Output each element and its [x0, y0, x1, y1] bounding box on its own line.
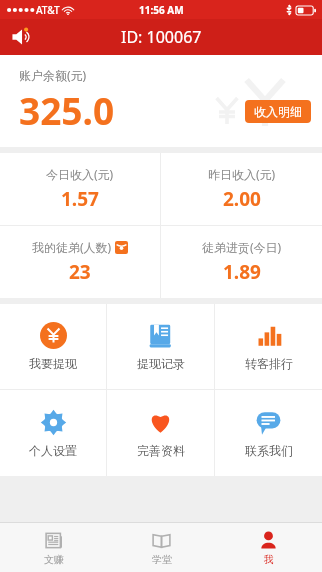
- button[interactable]: 今日收入(元): [0, 153, 160, 225]
- staticText: ID: 100067: [121, 26, 202, 48]
- button[interactable]: 完善资料: [107, 390, 214, 476]
- button[interactable]: 我: [215, 523, 322, 572]
- button[interactable]: 文赚: [0, 523, 108, 572]
- button[interactable]: 收入明细: [245, 100, 311, 123]
- staticText: 学堂: [152, 553, 172, 566]
- button[interactable]: 徒弟进贡(今日): [161, 226, 322, 298]
- staticText: 2.00: [223, 186, 261, 212]
- staticText: 个人设置: [29, 443, 77, 458]
- staticText: AT&T: [36, 3, 60, 17]
- staticText: 1.89: [223, 259, 261, 285]
- staticText: 今日收入(元): [46, 166, 114, 182]
- staticText: 325.0: [19, 85, 115, 135]
- staticText: 我要提现: [29, 356, 77, 371]
- staticText: 账户余额(元): [19, 67, 87, 83]
- staticText: 我的徒弟(人数): [32, 239, 112, 255]
- staticText: 文赚: [44, 553, 64, 566]
- staticText: 提现记录: [137, 356, 185, 371]
- button[interactable]: 我要提现: [0, 304, 106, 389]
- staticText: 联系我们: [245, 443, 293, 458]
- button[interactable]: 我的徒弟(人数): [0, 226, 160, 298]
- button[interactable]: 转客排行: [215, 304, 322, 389]
- staticText: 11:56 AM: [139, 3, 184, 17]
- button[interactable]: 学堂: [108, 523, 215, 572]
- staticText: 昨日收入(元): [208, 166, 276, 182]
- staticText: 徒弟进贡(今日): [202, 239, 282, 255]
- button[interactable]: 个人设置: [0, 390, 106, 476]
- button[interactable]: Announcements: [8, 24, 38, 50]
- staticText: 转客排行: [245, 356, 293, 371]
- staticText: 我: [264, 553, 274, 566]
- staticText: 1.57: [61, 186, 99, 212]
- button[interactable]: 联系我们: [215, 390, 322, 476]
- button[interactable]: 提现记录: [107, 304, 214, 389]
- staticText: 完善资料: [137, 443, 185, 458]
- button[interactable]: 昨日收入(元): [161, 153, 322, 225]
- staticText: 23: [69, 259, 91, 285]
- staticText: 收入明细: [254, 104, 302, 119]
